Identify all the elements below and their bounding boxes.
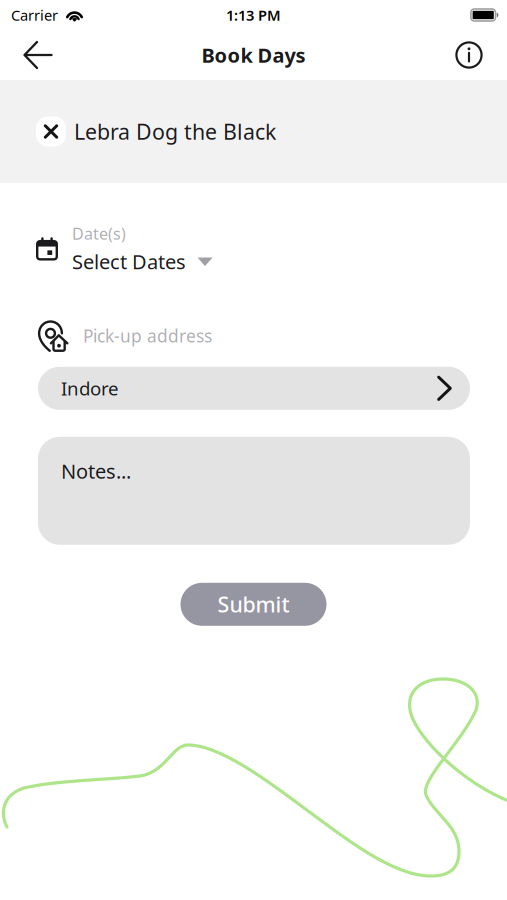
staticText: 1:13 PM bbox=[226, 5, 281, 25]
button[interactable]: Back bbox=[12, 31, 64, 79]
staticText: Carrier bbox=[11, 5, 58, 25]
staticText: Submit bbox=[217, 590, 289, 618]
staticText: Notes... bbox=[61, 458, 131, 484]
button[interactable]: Information bbox=[443, 31, 495, 79]
staticText: Select Dates bbox=[72, 248, 186, 275]
button[interactable]: Lebra Dog the Black bbox=[0, 80, 507, 183]
staticText: Lebra Dog the Black bbox=[74, 117, 276, 146]
button[interactable]: Submit bbox=[180, 583, 326, 626]
staticText: Date(s) bbox=[72, 223, 126, 244]
staticText: Pick-up address bbox=[83, 324, 212, 347]
staticText: Book Days bbox=[201, 42, 305, 68]
button[interactable]: Date(s) bbox=[0, 223, 507, 275]
staticText: Indore bbox=[61, 376, 119, 401]
button[interactable]: Indore bbox=[38, 367, 470, 410]
button[interactable]: Notes... bbox=[38, 437, 470, 545]
